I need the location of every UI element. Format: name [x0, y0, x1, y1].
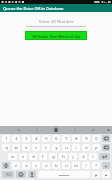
staticText: !	[85, 163, 87, 168]
button[interactable]: Emoji	[16, 171, 26, 178]
button[interactable]: Period	[102, 162, 110, 169]
staticText: k	[82, 154, 85, 159]
staticText: h	[62, 154, 65, 159]
button[interactable]: h	[59, 153, 67, 160]
button[interactable]: 2	[12, 135, 20, 142]
staticText: 2	[15, 136, 18, 141]
staticText: x	[25, 163, 28, 168]
button[interactable]: 9	[82, 135, 90, 142]
staticText: 7	[65, 136, 68, 141]
staticText: m	[74, 163, 78, 168]
staticText: t	[45, 145, 47, 150]
button[interactable]: Backspace	[102, 144, 110, 151]
staticText: 8	[75, 136, 78, 141]
staticText: n	[65, 163, 68, 168]
button[interactable]: e	[22, 144, 30, 151]
staticText: 4	[35, 136, 38, 141]
button[interactable]: Fill Similar Time Metrics of Out	[25, 31, 87, 40]
button[interactable]: v	[42, 162, 50, 169]
button[interactable]: Enter ID Number	[26, 18, 86, 27]
button[interactable]: r	[32, 144, 40, 151]
staticText: w	[14, 145, 18, 150]
staticText: s	[22, 154, 24, 159]
staticText: 5	[45, 136, 48, 141]
button[interactable]: 5	[42, 135, 50, 142]
staticText: z	[15, 163, 17, 168]
button[interactable]: b	[52, 162, 60, 169]
button[interactable]: g	[49, 153, 57, 160]
button[interactable]: Enter	[99, 153, 110, 160]
staticText: o	[85, 145, 88, 150]
staticText: g	[52, 154, 55, 159]
button[interactable]: ?123	[2, 171, 14, 178]
button[interactable]: o	[82, 144, 90, 151]
button[interactable]: Backspace	[102, 135, 110, 142]
staticText: 3	[25, 136, 28, 141]
staticText: b	[55, 163, 58, 168]
button[interactable]: Queue the Drive Off-in Database	[0, 4, 112, 12]
button[interactable]: n	[62, 162, 70, 169]
staticText: e	[25, 145, 28, 150]
button[interactable]: z	[12, 162, 20, 169]
staticText: j	[72, 154, 74, 159]
staticText: p	[95, 145, 98, 150]
button[interactable]: u	[62, 144, 70, 151]
staticText: Enter ID Number	[39, 18, 74, 24]
button[interactable]: l	[89, 153, 97, 160]
button[interactable]: s	[19, 153, 27, 160]
staticText: d	[32, 154, 35, 159]
staticText: i	[75, 145, 77, 150]
staticText: 6	[55, 136, 58, 141]
staticText: Fill Similar Time Metrics of Out	[32, 34, 81, 38]
button[interactable]: Voice input	[28, 171, 36, 178]
staticText: c	[35, 163, 37, 168]
button[interactable]: 8	[72, 135, 80, 142]
button[interactable]: c	[32, 162, 40, 169]
button[interactable]: 6	[52, 135, 60, 142]
button[interactable]: 1	[2, 135, 10, 142]
button[interactable]: i	[72, 144, 80, 151]
button[interactable]: Suggestions	[0, 126, 112, 134]
button[interactable]: ?	[92, 162, 100, 169]
staticText: ?123	[5, 173, 12, 177]
staticText: 9	[85, 136, 88, 141]
staticText: r	[35, 145, 37, 150]
button[interactable]: f	[39, 153, 47, 160]
button[interactable]: Shift	[2, 162, 10, 169]
button[interactable]: w	[12, 144, 20, 151]
button[interactable]: k	[79, 153, 87, 160]
button[interactable]: a	[8, 153, 17, 160]
staticText: y	[55, 145, 58, 150]
button[interactable]: !	[82, 162, 90, 169]
staticText: 0	[95, 136, 98, 141]
button[interactable]: j	[69, 153, 77, 160]
button[interactable]: 3	[22, 135, 30, 142]
staticText: ?	[95, 163, 97, 168]
button[interactable]: Period	[102, 171, 110, 178]
staticText: Queue the Drive Off-in Database	[3, 6, 64, 11]
button[interactable]: m	[72, 162, 80, 169]
staticText: q	[5, 145, 8, 150]
staticText: l	[92, 154, 94, 159]
button[interactable]: x	[22, 162, 30, 169]
button[interactable]: Comma	[92, 171, 100, 178]
button[interactable]: q	[2, 144, 10, 151]
button[interactable]: Space	[38, 171, 90, 178]
staticText: v	[45, 163, 48, 168]
button[interactable]: 0	[92, 135, 100, 142]
staticText: u	[65, 145, 68, 150]
button[interactable]: t	[42, 144, 50, 151]
button[interactable]: d	[29, 153, 37, 160]
button[interactable]: 4	[32, 135, 40, 142]
button[interactable]: p	[92, 144, 100, 151]
staticText: a	[11, 154, 14, 159]
button[interactable]: y	[52, 144, 60, 151]
button[interactable]: 7	[62, 135, 70, 142]
staticText: 1	[5, 136, 8, 141]
staticText: f	[42, 154, 44, 159]
